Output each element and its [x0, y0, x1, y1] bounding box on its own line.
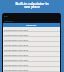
button[interactable]: Percentage calculator: [3, 52, 60, 56]
button[interactable]: Percentage calculator: [3, 27, 60, 31]
staticText: Percentage calculator: [4, 43, 29, 46]
staticText: Percentage calculator: [4, 48, 29, 51]
button[interactable]: Percentage calculator: [3, 47, 60, 51]
staticText: Percentage calculator: [4, 53, 29, 56]
staticText: Calculator: [26, 24, 37, 27]
staticText: Percentage calculator: [4, 58, 29, 61]
staticText: 9:41: [4, 15, 8, 17]
staticText: Percentage calculator: [4, 33, 29, 36]
staticText: Percentage calculator: [4, 38, 29, 41]
staticText: Percentage calculator: [4, 28, 29, 31]
button[interactable]: Percentage calculator: [3, 32, 60, 36]
button[interactable]: Percentage calculator: [3, 57, 60, 61]
staticText: Percentage calculator: [4, 68, 29, 71]
button[interactable]: Percentage calculator: [3, 42, 60, 46]
button[interactable]: Percentage calculator: [3, 67, 60, 71]
staticText: Percentage calculator: [4, 63, 29, 66]
staticText: Built-in calculator in one place: [15, 1, 49, 9]
button[interactable]: Percentage calculator: [3, 62, 60, 66]
staticText: Calculator: [4, 20, 14, 23]
button[interactable]: Percentage calculator: [3, 37, 60, 41]
